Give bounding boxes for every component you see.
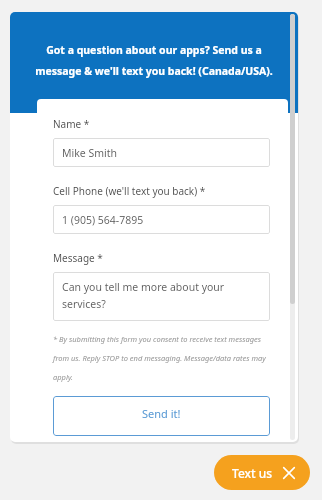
staticText: Name * (53, 117, 90, 131)
staticText: Mike Smith (62, 146, 118, 160)
button[interactable]: 1 (905) 564-7895 (53, 205, 270, 234)
staticText: * By submitting this form you consent to… (53, 334, 270, 382)
button[interactable]: Send it! (53, 396, 270, 436)
staticText: Message * (53, 251, 103, 265)
staticText: Send it! (142, 406, 181, 421)
staticText: 1 (905) 564-7895 (62, 213, 144, 227)
button[interactable]: Text us (214, 455, 310, 490)
button[interactable]: Mike Smith (53, 138, 270, 167)
other: Close (282, 466, 296, 480)
button[interactable]: Can you tell me more about your services… (53, 272, 270, 321)
staticText: Got a question about our apps? Send us a… (24, 43, 284, 79)
staticText: Can you tell me more about your services… (62, 280, 225, 311)
staticText: Text us (232, 465, 273, 481)
staticText: Cell Phone (we'll text you back) * (53, 184, 206, 198)
